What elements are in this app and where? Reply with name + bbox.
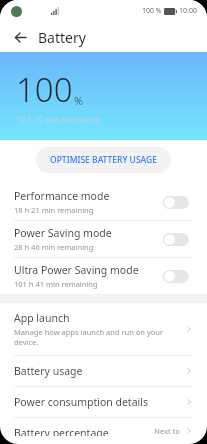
- button[interactable]: Ultra Power Saving mode toggle: [163, 267, 193, 285]
- button[interactable]: Ultra Power Saving mode: [0, 258, 207, 294]
- staticText: 28 h 46 min remaining: [14, 242, 94, 252]
- button[interactable]: Power Saving mode: [0, 221, 207, 257]
- staticText: Ultra Power Saving mode: [14, 263, 139, 277]
- staticText: 10:00: [179, 6, 197, 16]
- button[interactable]: Battery usage: [0, 356, 207, 386]
- staticText: Power Saving mode: [14, 226, 112, 240]
- button[interactable]: Battery percentage: [0, 418, 207, 444]
- staticText: 18 h 21 min remaining: [14, 205, 94, 215]
- staticText: OPTIMISE BATTERY USAGE: [50, 154, 157, 166]
- staticText: Battery usage: [14, 364, 83, 378]
- button[interactable]: Power Saving mode toggle: [163, 230, 193, 248]
- staticText: 100 %: [142, 6, 162, 16]
- staticText: Power consumption details: [14, 395, 148, 409]
- button[interactable]: Performance mode toggle: [163, 193, 193, 211]
- staticText: 19 h 19 min remaining: [16, 114, 101, 125]
- button[interactable]: Back: [8, 25, 32, 49]
- staticText: 100: [16, 67, 73, 112]
- staticText: Battery: [38, 28, 86, 47]
- button[interactable]: App launch: [0, 303, 207, 355]
- button[interactable]: Performance mode: [0, 184, 207, 220]
- staticText: Manage how apps launch and run on your d…: [14, 327, 185, 347]
- button[interactable]: Power consumption details: [0, 387, 207, 417]
- staticText: Performance mode: [14, 189, 110, 203]
- staticText: App launch: [14, 311, 70, 325]
- staticText: 101 h 41 min remaining: [14, 279, 98, 289]
- staticText: Battery percentage: [14, 426, 109, 436]
- staticText: Next to battery icon: [137, 426, 180, 436]
- staticText: %: [74, 93, 83, 108]
- button[interactable]: OPTIMISE BATTERY USAGE: [36, 147, 171, 173]
